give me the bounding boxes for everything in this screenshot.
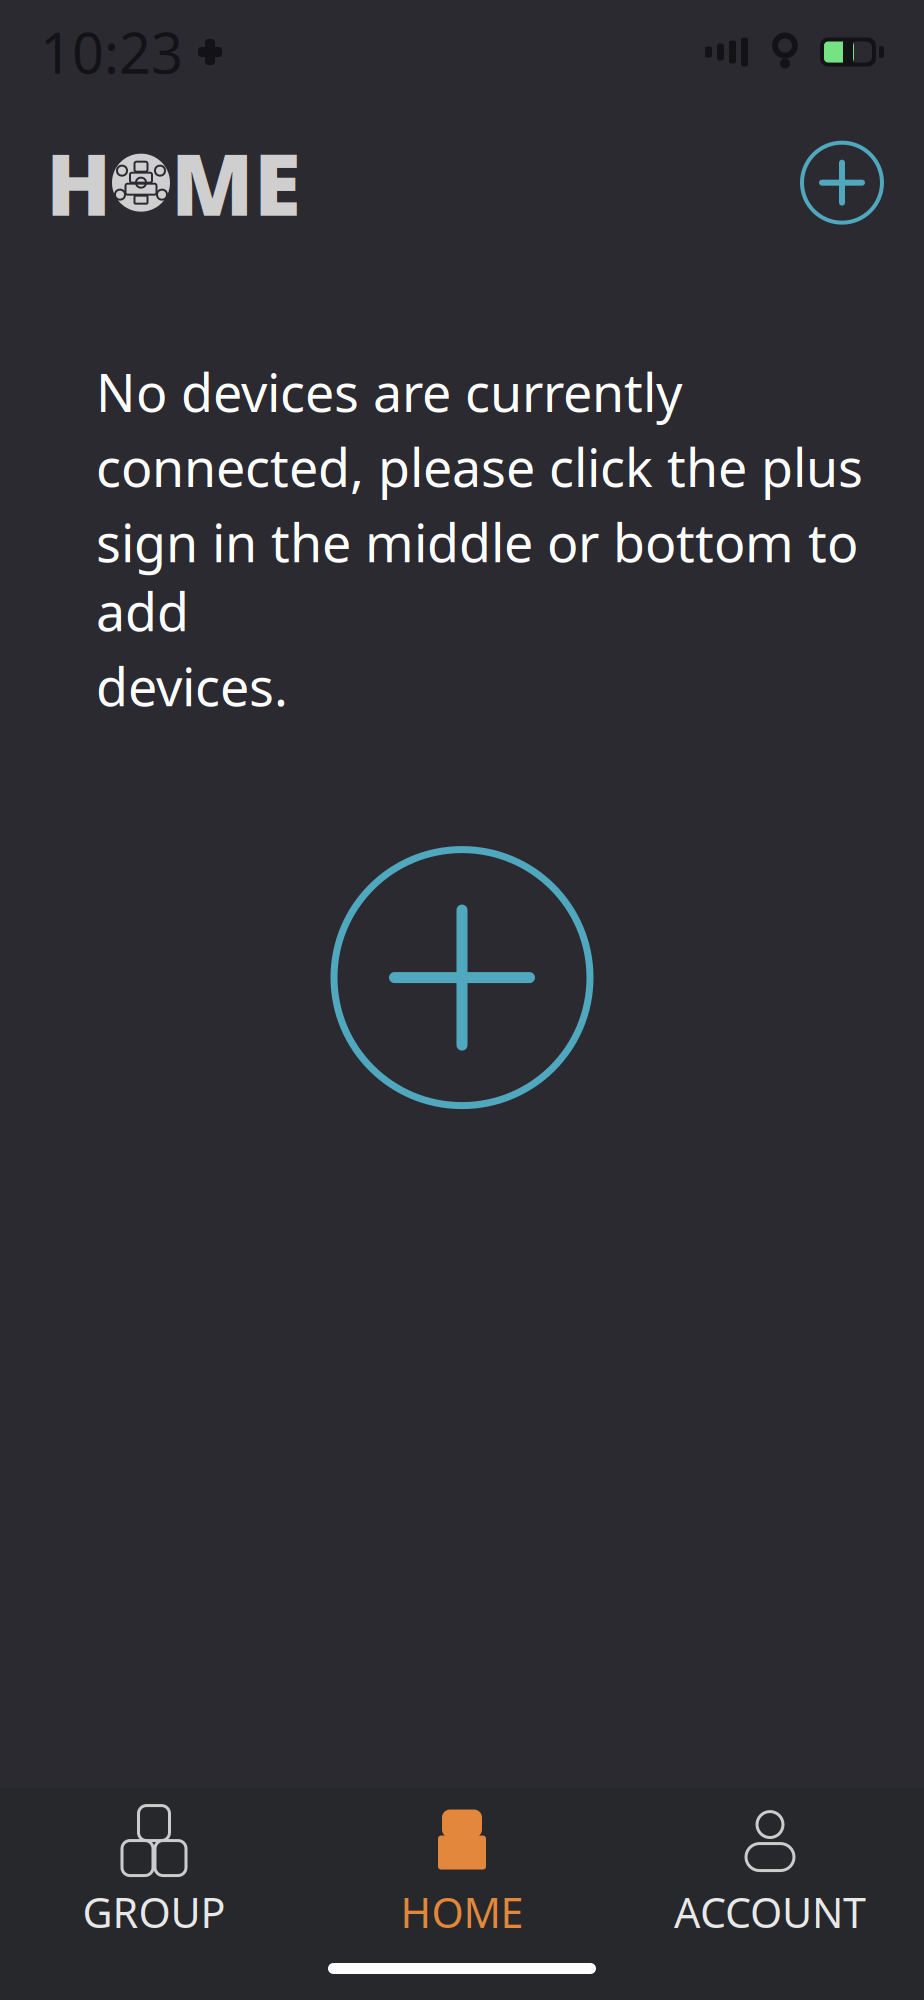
staticText: No devices are currently (96, 357, 683, 426)
button[interactable]: Add device (796, 137, 888, 229)
button[interactable]: HOME (308, 1812, 616, 1938)
staticText: ACCOUNT (674, 1885, 866, 1939)
staticText: GROUP (82, 1885, 225, 1939)
staticText: connected, please click the plus (96, 432, 863, 501)
button[interactable]: Add device (317, 833, 607, 1123)
staticText: 10:23 (40, 15, 183, 89)
staticText: devices. (96, 651, 288, 721)
staticText: ME (171, 126, 301, 239)
staticText: H (46, 126, 111, 239)
button[interactable]: ACCOUNT (616, 1812, 924, 1938)
staticText: sign in the middle or bottom to add (96, 507, 858, 645)
staticText: HOME (400, 1885, 523, 1939)
button[interactable]: GROUP (0, 1812, 308, 1938)
